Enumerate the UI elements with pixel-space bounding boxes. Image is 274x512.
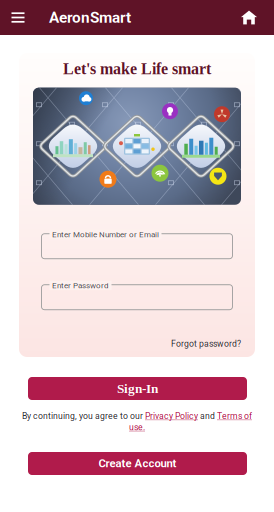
- button[interactable]: Terms of: [217, 411, 252, 421]
- staticText: Terms of: [217, 411, 252, 421]
- staticText: and: [198, 411, 217, 421]
- staticText: Enter Password: [52, 281, 109, 290]
- staticText: AeronSmart: [49, 8, 131, 26]
- button[interactable]: Home: [232, 0, 266, 35]
- button[interactable]: Menu: [0, 0, 36, 35]
- staticText: Sign-In: [117, 381, 158, 396]
- staticText: Let's make Life smart: [63, 60, 211, 78]
- staticText: Forgot password?: [171, 339, 241, 349]
- staticText: Create Account: [98, 457, 176, 470]
- staticText: Privacy Policy: [145, 411, 198, 421]
- button[interactable]: use.: [129, 422, 145, 432]
- button[interactable]: Create Account: [28, 452, 247, 475]
- button[interactable]: Privacy Policy: [145, 411, 198, 421]
- button[interactable]: Sign-In: [28, 377, 247, 400]
- button[interactable]: Forgot password?: [33, 339, 241, 349]
- staticText: use.: [129, 422, 145, 432]
- staticText: Enter Mobile Number or Email: [52, 230, 159, 239]
- staticText: By continuing, you agree to our: [22, 411, 145, 421]
